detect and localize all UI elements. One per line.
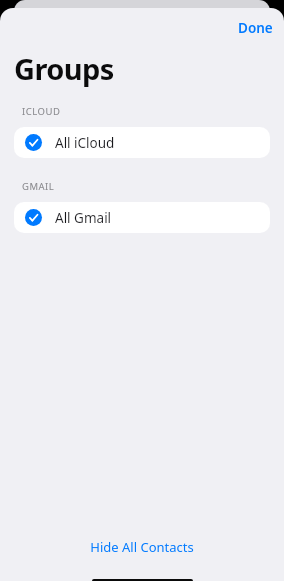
staticText: All Gmail	[55, 209, 112, 227]
staticText: All iCloud	[55, 134, 115, 152]
staticText: Hide All Contacts	[90, 538, 194, 556]
staticText: ICLOUD	[22, 105, 61, 118]
button[interactable]: All Gmail	[14, 202, 270, 233]
other: Home indicator	[92, 579, 193, 581]
staticText: GMAIL	[22, 180, 55, 193]
staticText: Done	[238, 19, 273, 37]
button[interactable]: All iCloud	[14, 127, 270, 158]
button[interactable]: Done	[235, 16, 276, 40]
button[interactable]: Hide All Contacts	[82, 534, 202, 560]
staticText: Groups	[14, 49, 114, 88]
